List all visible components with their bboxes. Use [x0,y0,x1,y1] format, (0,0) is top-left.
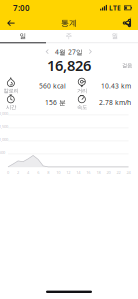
staticText: 14 [76,170,80,175]
staticText: 24 [126,170,130,175]
staticText: LTE [109,4,121,12]
staticText: 1,500 [0,124,8,129]
button[interactable]: 주 [46,30,92,42]
staticText: 칼로리 [3,87,18,94]
staticText: 시간 [6,104,16,111]
button[interactable]: 월 [92,30,138,42]
staticText: 10 [56,170,60,175]
staticText: 통계 [61,18,77,28]
staticText: 16,826 [47,56,91,75]
staticText: 월 [111,32,118,40]
staticText: 걸음 [122,62,132,69]
button[interactable]: Back [0,16,22,30]
staticText: 560 kcal [39,81,66,90]
staticText: 거리 [77,87,87,94]
staticText: 2.78 km/h [99,98,131,107]
staticText: 4 [27,170,29,175]
staticText: 일 [19,32,26,40]
staticText: 18 [96,170,100,175]
staticText: 속도 [77,104,87,111]
staticText: 7:00 [13,3,30,13]
staticText: 2 [17,170,19,175]
button[interactable]: Share [116,16,138,30]
button[interactable]: 일 [0,30,46,42]
staticText: 16 [86,170,90,175]
staticText: 1,000 [0,137,8,142]
staticText: 8 [47,170,49,175]
button[interactable]: Next day [86,47,95,56]
staticText: 156 분 [45,98,66,107]
staticText: 10.43 km [101,81,131,90]
staticText: 주 [65,32,72,40]
staticText: 6 [37,170,39,175]
staticText: 22 [116,170,120,175]
button[interactable]: Previous day [43,47,52,56]
staticText: 20 [106,170,110,175]
staticText: 500 [0,150,5,155]
staticText: 2,000 [0,111,8,116]
staticText: 4월 27일 [55,47,83,56]
staticText: 0 [7,170,9,175]
staticText: 12 [66,170,70,175]
